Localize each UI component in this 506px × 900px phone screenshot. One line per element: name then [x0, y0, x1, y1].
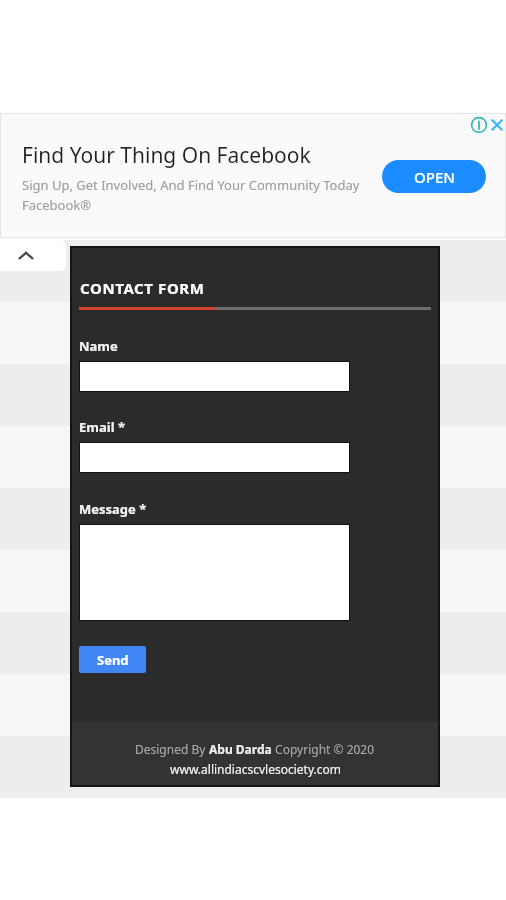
button[interactable]: [79, 361, 350, 392]
staticText: Find Your Thing On Facebook: [22, 141, 311, 170]
staticText: Email *: [79, 418, 125, 436]
staticText: CONTACT FORM: [80, 278, 205, 298]
button[interactable]: [79, 442, 350, 473]
staticText: Copyright © 2020: [272, 741, 375, 757]
button[interactable]: OPEN: [382, 160, 486, 193]
staticText: Name: [79, 337, 118, 355]
button[interactable]: Collapse: [0, 240, 66, 271]
button[interactable]: [79, 524, 350, 621]
staticText: Send: [97, 651, 129, 669]
button[interactable]: Find Your Thing On Facebook: [0, 113, 506, 238]
staticText: OPEN: [414, 167, 455, 187]
button[interactable]: Close ad: [488, 116, 506, 134]
staticText: Designed By: [135, 741, 209, 757]
staticText: Message *: [79, 500, 147, 518]
staticText: Sign Up, Get Involved, And Find Your Com…: [22, 176, 367, 214]
staticText: Abu Darda: [209, 741, 272, 757]
button[interactable]: Send: [79, 646, 146, 673]
button[interactable]: Ad information: [470, 116, 488, 134]
staticText: www.allindiacscvlesociety.com: [170, 761, 341, 777]
